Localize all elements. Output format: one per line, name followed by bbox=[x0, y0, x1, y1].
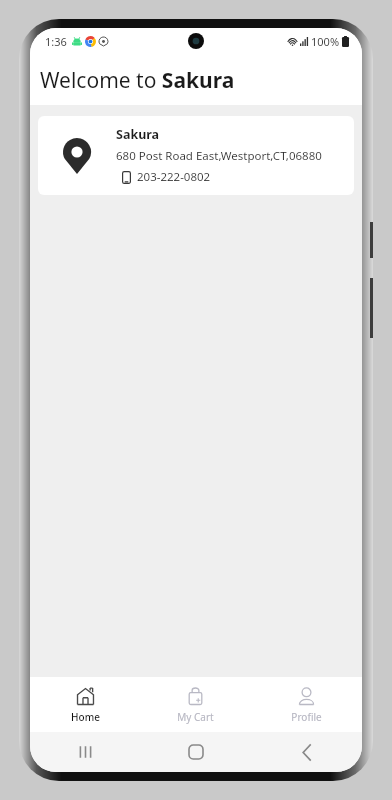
staticText: 1:36 bbox=[45, 34, 67, 49]
button[interactable]: Home bbox=[30, 677, 140, 732]
button[interactable]: Back bbox=[251, 732, 362, 772]
staticText: Welcome to Sakura bbox=[40, 66, 235, 95]
button[interactable]: Recent apps bbox=[30, 732, 140, 772]
staticText: 100% bbox=[311, 34, 340, 49]
button[interactable]: Sakura bbox=[38, 116, 354, 195]
staticText: My Cart bbox=[177, 710, 214, 724]
button[interactable]: Profile bbox=[251, 677, 362, 732]
staticText: Sakura bbox=[116, 126, 160, 143]
staticText: 203-222-0802 bbox=[137, 169, 211, 185]
button[interactable]: Home bbox=[140, 732, 251, 772]
staticText: Home bbox=[71, 710, 100, 724]
staticText: 680 Post Road East,Westport,CT,06880 bbox=[116, 148, 322, 164]
staticText: Profile bbox=[291, 710, 322, 724]
button[interactable]: My Cart bbox=[140, 677, 251, 732]
